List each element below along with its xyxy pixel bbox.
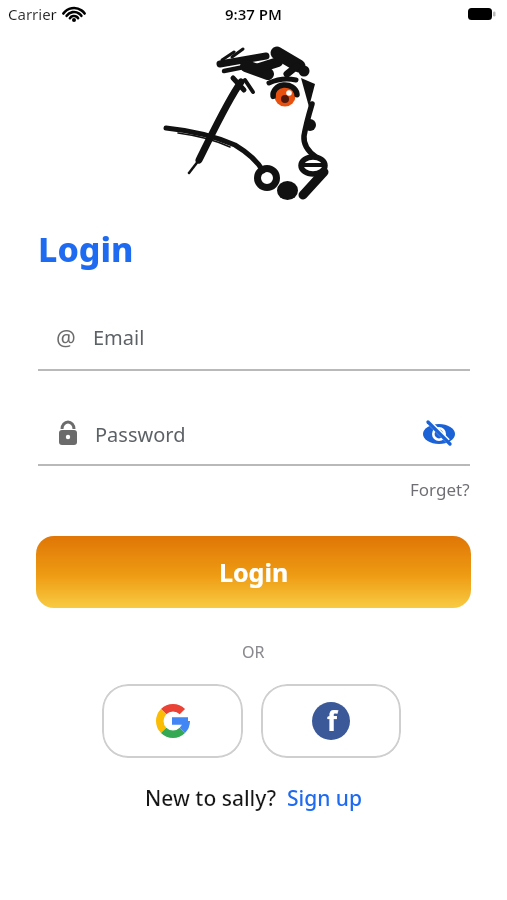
staticText: f bbox=[327, 703, 338, 738]
button[interactable]: Forget? bbox=[410, 478, 470, 501]
button[interactable] bbox=[422, 418, 456, 450]
button[interactable]: Sign up bbox=[287, 784, 363, 813]
button[interactable]: Login bbox=[36, 536, 471, 608]
staticText: @ bbox=[56, 322, 76, 352]
staticText: 9:37 PM bbox=[225, 4, 282, 24]
button[interactable]: f bbox=[261, 684, 401, 758]
staticText: Password bbox=[95, 421, 186, 448]
staticText: OR bbox=[242, 641, 265, 663]
button[interactable]: Password bbox=[38, 412, 470, 456]
staticText: Login bbox=[38, 226, 134, 272]
staticText: Carrier bbox=[8, 4, 57, 24]
button[interactable] bbox=[102, 684, 243, 758]
staticText: New to sally? bbox=[145, 784, 277, 813]
staticText: Email bbox=[93, 324, 145, 351]
staticText: Login bbox=[219, 555, 289, 589]
button[interactable]: @ bbox=[38, 315, 470, 359]
